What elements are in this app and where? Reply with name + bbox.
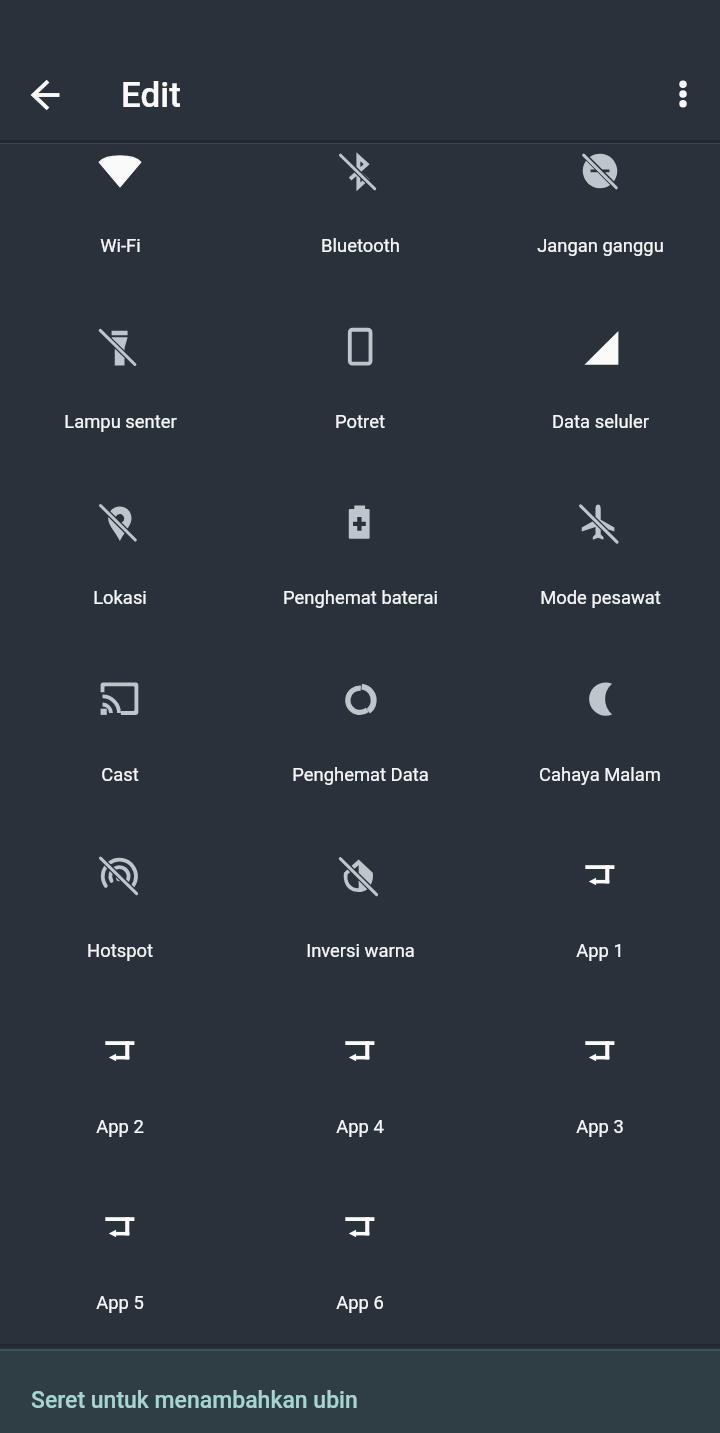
staticText: Data seluler: [552, 411, 649, 433]
button[interactable]: More options: [649, 61, 716, 128]
button[interactable]: Lokasi: [0, 500, 240, 676]
staticText: Edit: [121, 75, 181, 116]
button[interactable]: App 1: [480, 853, 720, 1029]
button[interactable]: App 3: [480, 1029, 720, 1205]
staticText: App 2: [96, 1116, 144, 1138]
button[interactable]: Seret untuk menambahkan ubin: [0, 1351, 720, 1433]
staticText: Wi-Fi: [100, 235, 141, 257]
staticText: Seret untuk menambahkan ubin: [31, 1387, 358, 1414]
button[interactable]: Penghemat Data: [240, 677, 480, 853]
button[interactable]: Inversi warna: [240, 853, 480, 1029]
staticText: Inversi warna: [306, 940, 415, 962]
button[interactable]: Wi-Fi: [0, 148, 240, 324]
button[interactable]: Data seluler: [480, 324, 720, 500]
staticText: Hotspot: [87, 940, 153, 962]
button[interactable]: Potret: [240, 324, 480, 500]
button[interactable]: App 4: [240, 1029, 480, 1205]
button[interactable]: Lampu senter: [0, 324, 240, 500]
staticText: App 4: [336, 1116, 384, 1138]
staticText: Lampu senter: [64, 411, 177, 433]
staticText: Cahaya Malam: [539, 764, 661, 786]
button[interactable]: Back: [14, 61, 81, 128]
staticText: Penghemat Data: [292, 764, 429, 786]
button[interactable]: Bluetooth: [240, 148, 480, 324]
staticText: App 3: [576, 1116, 624, 1138]
button[interactable]: Cast: [0, 677, 240, 853]
button[interactable]: App 6: [240, 1205, 480, 1381]
staticText: App 1: [576, 940, 624, 962]
button[interactable]: Cahaya Malam: [480, 677, 720, 853]
staticText: Mode pesawat: [540, 587, 661, 609]
button[interactable]: Jangan ganggu: [480, 148, 720, 324]
staticText: Lokasi: [93, 587, 147, 609]
staticText: Penghemat baterai: [283, 587, 438, 609]
button[interactable]: Penghemat baterai: [240, 500, 480, 676]
button[interactable]: App 5: [0, 1205, 240, 1381]
staticText: Cast: [101, 764, 139, 786]
staticText: App 5: [96, 1292, 144, 1314]
button[interactable]: Hotspot: [0, 853, 240, 1029]
staticText: Bluetooth: [321, 235, 400, 257]
button[interactable]: App 2: [0, 1029, 240, 1205]
staticText: App 6: [336, 1292, 384, 1314]
staticText: Potret: [335, 411, 385, 433]
staticText: Jangan ganggu: [537, 235, 664, 257]
button[interactable]: Mode pesawat: [480, 500, 720, 676]
